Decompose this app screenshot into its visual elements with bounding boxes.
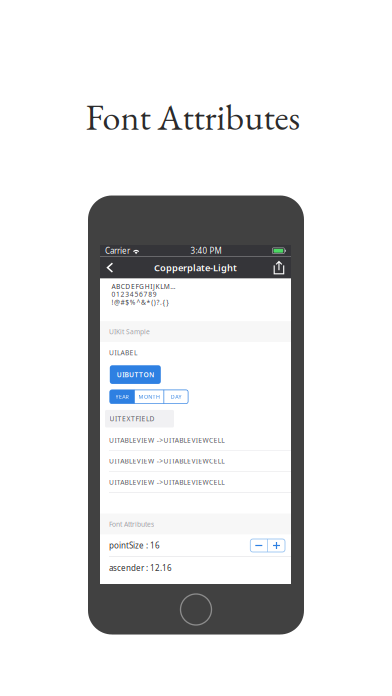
button[interactable]: Decrease point size: [250, 539, 267, 552]
staticText: Font Attributes: [85, 93, 300, 140]
button[interactable]: UITABLEVIEW ->UITABLEVIEWCELL: [100, 430, 291, 451]
staticText: DAY: [171, 393, 181, 400]
staticText: UITABLEVIEW ->UITABLEVIEWCELL: [109, 478, 224, 486]
staticText: !@#$%^&*()?.{}: [111, 298, 169, 307]
staticText: MONTH: [139, 393, 160, 400]
staticText: Font Attributes: [109, 520, 154, 528]
staticText: YEAR: [115, 393, 128, 400]
staticText: 3:40 PM: [191, 245, 222, 256]
button[interactable]: YEAR: [110, 390, 134, 404]
staticText: UITABLEVIEW ->UITABLEVIEWCELL: [109, 436, 224, 444]
staticText: UILABEL: [109, 348, 137, 357]
staticText: UIKit Sample: [109, 327, 150, 336]
button[interactable]: Back: [100, 256, 120, 279]
staticText: Carrier: [105, 245, 130, 256]
button[interactable]: UILABEL: [100, 342, 291, 363]
button[interactable]: Increase point size: [268, 539, 285, 552]
staticText: 0123456789: [111, 290, 157, 299]
staticText: ABCDEFGHIJKLMN: [111, 282, 175, 291]
button[interactable]: Share: [269, 256, 289, 279]
staticText: UITABLEVIEW ->UITABLEVIEWCELL: [109, 456, 224, 465]
staticText: UITEXTFIELD: [109, 414, 154, 423]
staticText: Copperplate-Light: [154, 261, 237, 274]
staticText: ascender : 12.16: [109, 563, 172, 573]
button[interactable]: UIBUTTON: [110, 365, 161, 384]
staticText: pointSize : 16: [109, 540, 160, 551]
button[interactable]: UITABLEVIEW ->UITABLEVIEWCELL: [100, 472, 291, 493]
button[interactable]: MONTH: [135, 390, 163, 404]
button[interactable]: UITABLEVIEW ->UITABLEVIEWCELL: [100, 451, 291, 472]
button[interactable]: DAY: [164, 390, 188, 404]
staticText: UIBUTTON: [117, 370, 154, 379]
